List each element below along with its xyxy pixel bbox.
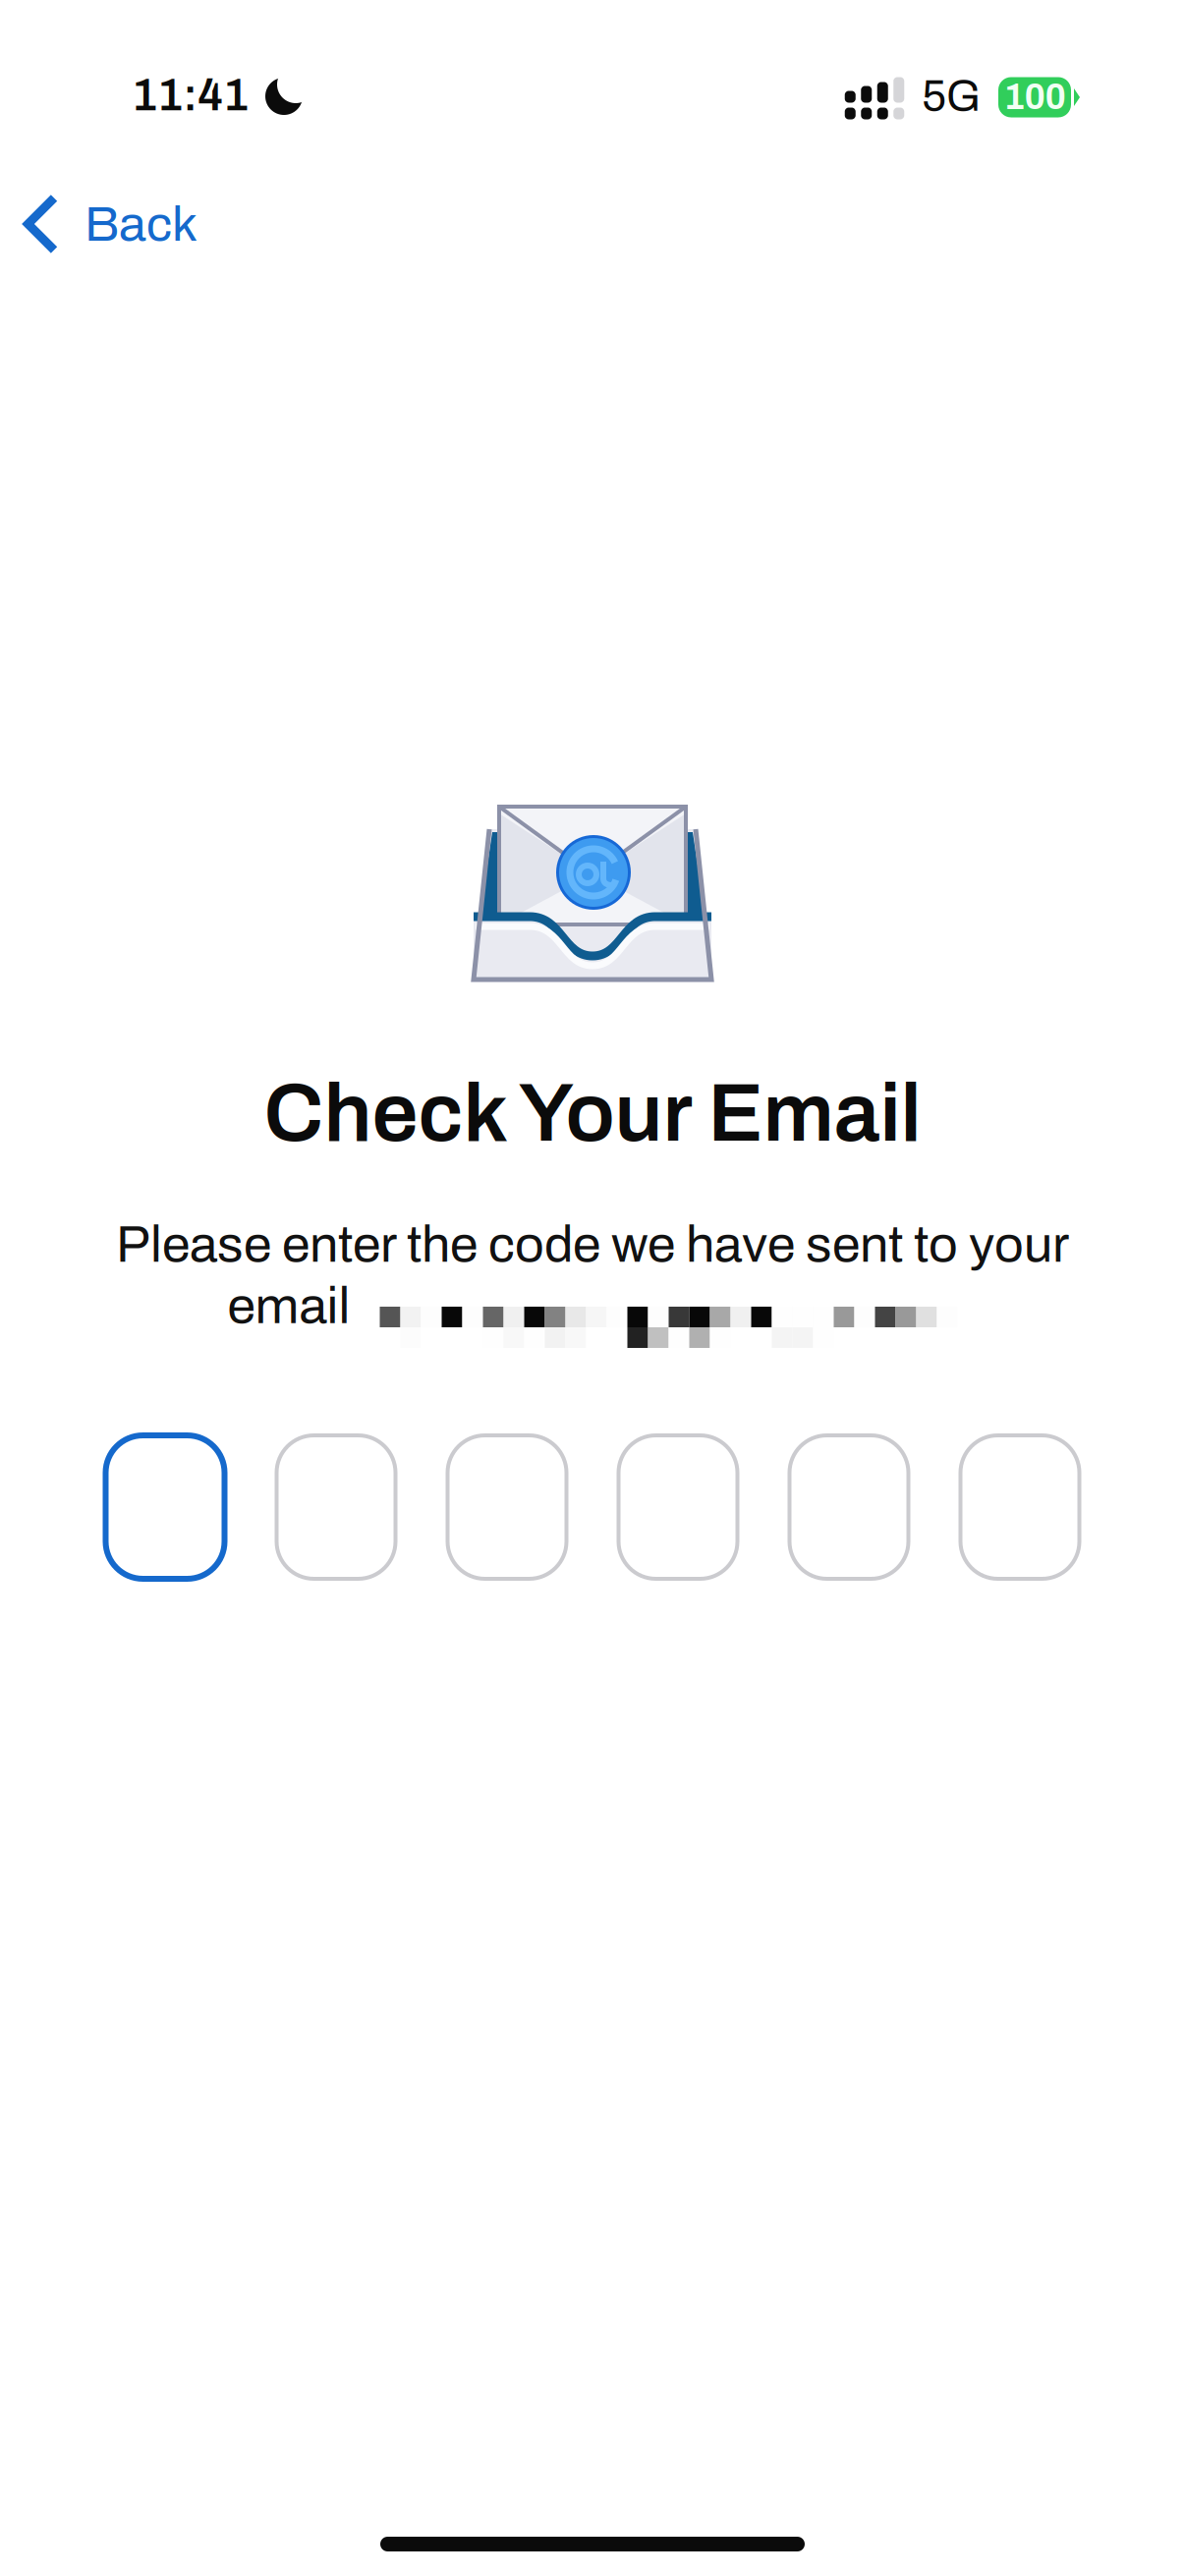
- button[interactable]: Verification code digit 6: [958, 1432, 1082, 1582]
- staticText: 100: [1004, 78, 1066, 117]
- button[interactable]: Back: [0, 180, 221, 268]
- button[interactable]: Verification code digit 4: [616, 1432, 740, 1582]
- button[interactable]: Verification code digit 1: [103, 1432, 227, 1582]
- staticText: Back: [85, 197, 197, 251]
- staticText: 5G: [922, 73, 981, 120]
- staticText: 11:41: [132, 71, 249, 119]
- button[interactable]: Verification code digit 3: [445, 1432, 569, 1582]
- staticText: Please enter the code we have sent to yo…: [116, 1217, 1069, 1273]
- staticText: email: [227, 1278, 350, 1334]
- button[interactable]: Verification code digit 2: [274, 1432, 398, 1582]
- button[interactable]: Verification code digit 5: [787, 1432, 911, 1582]
- staticText: Check Your Email: [264, 1068, 921, 1158]
